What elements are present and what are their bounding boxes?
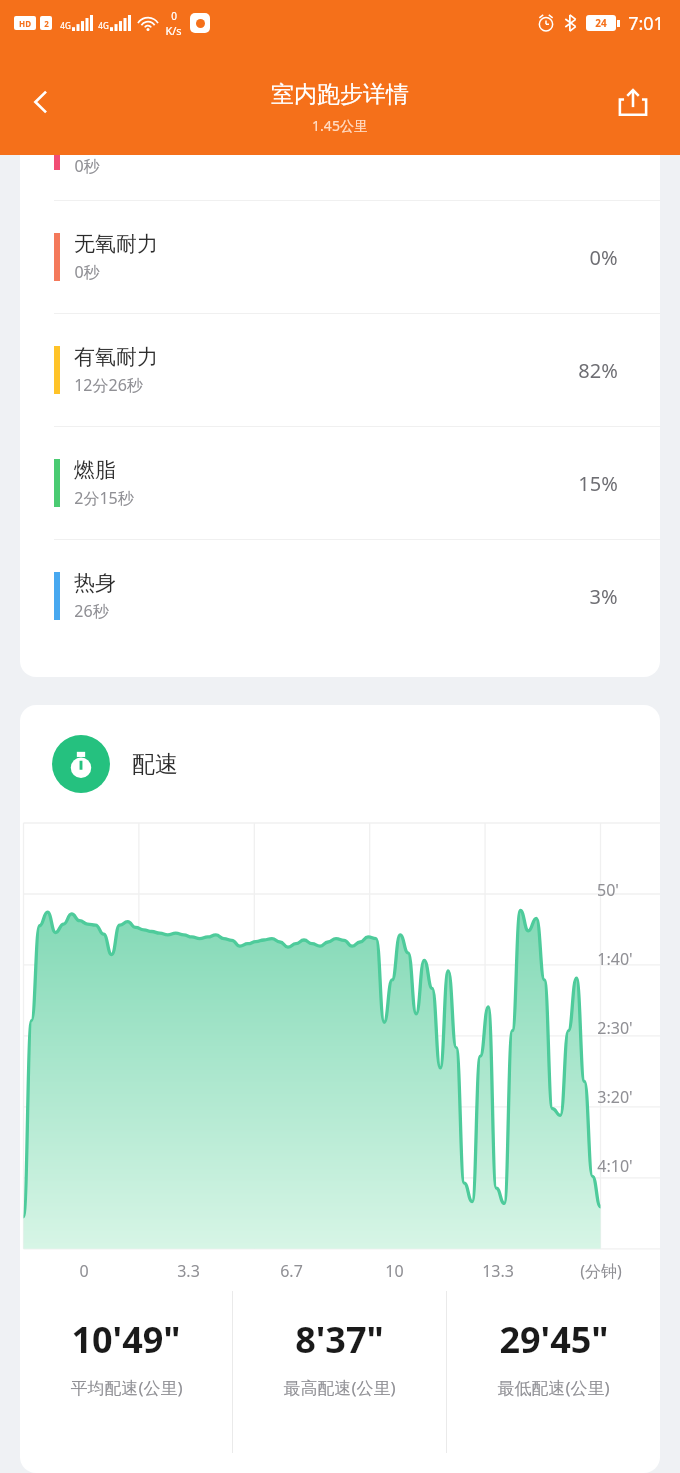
staticText: 10 — [385, 1260, 404, 1282]
staticText: 6.7 — [280, 1260, 303, 1282]
staticText: 0 — [171, 9, 177, 23]
staticText: 50' — [597, 879, 619, 901]
button[interactable]: 无氧耐力 — [20, 201, 660, 313]
button[interactable]: 配速 — [52, 705, 660, 823]
staticText: 燃脂 — [74, 457, 116, 483]
staticText: 热身 — [74, 570, 116, 596]
button[interactable]: Back — [10, 71, 72, 133]
staticText: 室内跑步详情 — [271, 80, 409, 109]
staticText: 8'37" — [295, 1315, 384, 1364]
button[interactable]: 有氧耐力 — [20, 314, 660, 426]
staticText: 4G — [60, 20, 71, 31]
button[interactable]: 燃脂 — [20, 427, 660, 539]
staticText: 3.3 — [177, 1260, 200, 1282]
staticText: 2分15秒 — [74, 487, 134, 509]
staticText: 13.3 — [482, 1260, 514, 1282]
staticText: 2:30' — [597, 1017, 633, 1039]
staticText: 3:20' — [597, 1086, 633, 1108]
staticText: (分钟) — [580, 1260, 622, 1282]
staticText: 无氧耐力 — [74, 231, 158, 257]
staticText: 10'49" — [71, 1315, 181, 1364]
staticText: 26秒 — [74, 600, 109, 622]
staticText: 配速 — [132, 750, 178, 779]
staticText: 2 — [44, 18, 49, 29]
staticText: K/s — [165, 23, 182, 38]
button[interactable]: 热身 — [20, 540, 660, 652]
button[interactable]: Share — [602, 71, 664, 133]
button[interactable]: 10'49" — [20, 1291, 232, 1453]
staticText: 1.45公里 — [312, 116, 368, 135]
staticText: 29'45" — [499, 1315, 609, 1364]
staticText: 平均配速(公里) — [70, 1376, 183, 1399]
staticText: 82% — [578, 357, 618, 384]
staticText: 最低配速(公里) — [497, 1376, 610, 1399]
button[interactable]: 29'45" — [447, 1291, 660, 1453]
staticText: 24 — [595, 16, 607, 30]
staticText: 0 — [79, 1260, 89, 1282]
staticText: 4:10' — [597, 1155, 633, 1177]
staticText: 12分26秒 — [74, 374, 143, 396]
button[interactable]: 0秒 — [20, 155, 660, 200]
staticText: 1:40' — [597, 948, 633, 970]
staticText: 7:01 — [628, 11, 664, 36]
staticText: 3% — [589, 583, 618, 610]
staticText: 15% — [578, 470, 618, 497]
staticText: 0秒 — [74, 261, 100, 283]
staticText: 0% — [589, 244, 618, 271]
staticText: 4G — [98, 20, 109, 31]
staticText: 有氧耐力 — [74, 344, 158, 370]
staticText: HD — [19, 18, 31, 29]
staticText: 0秒 — [74, 155, 100, 177]
button[interactable]: 8'37" — [233, 1291, 446, 1453]
staticText: 最高配速(公里) — [283, 1376, 396, 1399]
